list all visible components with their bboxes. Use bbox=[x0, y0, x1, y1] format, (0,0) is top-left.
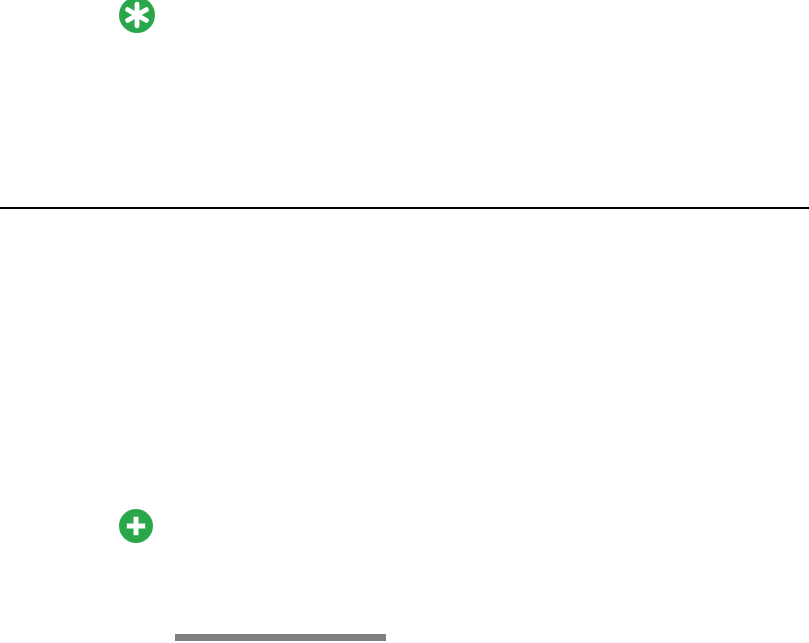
button[interactable]: Add bbox=[119, 509, 153, 543]
button[interactable]: Highlight bbox=[119, 0, 155, 33]
